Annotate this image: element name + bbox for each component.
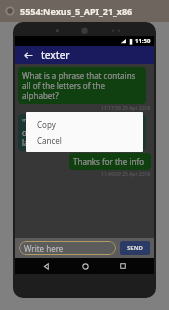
staticText: SEND	[127, 244, 143, 252]
button[interactable]: What is a phrase that contains all of th…	[18, 67, 146, 104]
button[interactable]: SEND	[120, 241, 150, 255]
button[interactable]: "The quick brown fox jumps over the lazy…	[18, 114, 146, 151]
button[interactable]: Home	[77, 258, 93, 274]
button[interactable]: Back	[21, 48, 35, 62]
staticText: 11:49:09 25 Apr 2016	[101, 171, 151, 178]
staticText: 5554:Nexus_5_API_21_x86	[20, 5, 133, 17]
staticText: 11:50	[135, 37, 151, 45]
staticText: Write here	[24, 243, 64, 254]
staticText: Copy	[37, 119, 56, 130]
staticText: Cancel	[37, 135, 62, 146]
button[interactable]: Cancel	[26, 132, 143, 148]
staticText: "The quick brown fox jumps over the lazy…	[22, 117, 142, 148]
staticText: 11:17:56 25 Apr 2016	[101, 105, 151, 112]
staticText: Thanks for the info	[73, 156, 145, 167]
staticText: texter	[41, 48, 70, 62]
button[interactable]: Recent apps	[115, 258, 131, 274]
staticText: What is a phrase that contains all of th…	[22, 70, 142, 101]
button[interactable]: Copy	[26, 116, 143, 132]
button[interactable]: Write here	[19, 241, 116, 255]
button[interactable]: Thanks for the info	[69, 153, 151, 170]
button[interactable]: Back	[38, 258, 54, 274]
